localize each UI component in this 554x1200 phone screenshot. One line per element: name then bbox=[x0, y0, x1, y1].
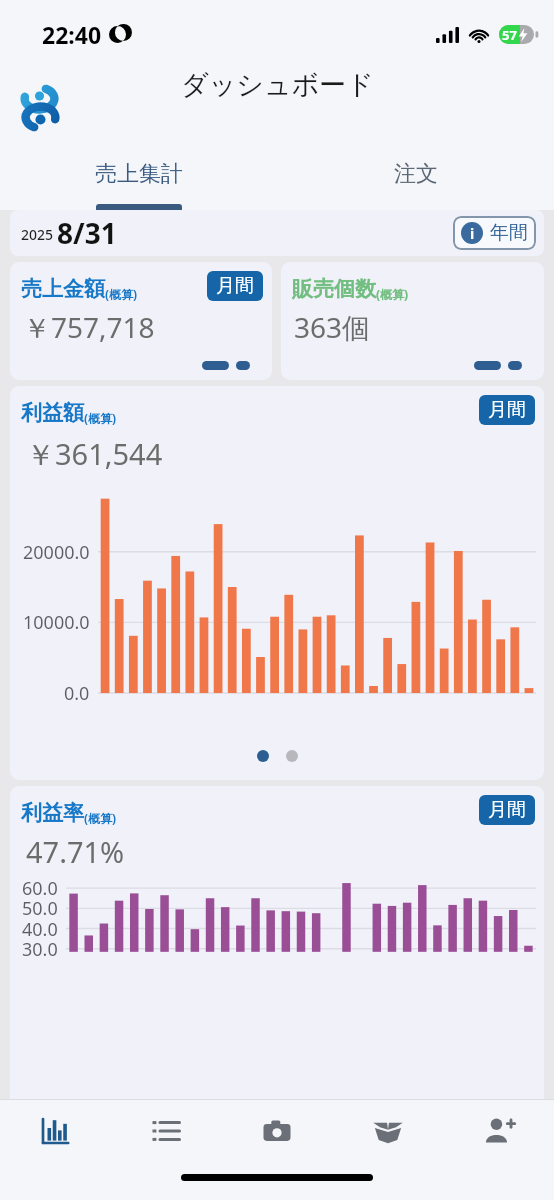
button[interactable]: App logo bbox=[16, 84, 64, 132]
button[interactable]: 月間 bbox=[207, 271, 263, 301]
button[interactable]: 2025 bbox=[10, 210, 544, 256]
button[interactable]: List bbox=[110, 1100, 221, 1162]
staticText: ￥361,544 bbox=[26, 434, 163, 474]
button[interactable]: 利益額 bbox=[10, 386, 544, 780]
staticText: 注文 bbox=[394, 160, 438, 188]
staticText: 利益率 bbox=[21, 800, 84, 826]
staticText: 30.0 bbox=[22, 937, 58, 962]
button[interactable]: 売上集計 bbox=[0, 148, 277, 210]
button[interactable]: Inventory bbox=[332, 1100, 443, 1162]
staticText: 60.0 bbox=[22, 876, 58, 901]
staticText: 2025 bbox=[21, 225, 54, 244]
button[interactable]: 販売個数 bbox=[281, 262, 544, 380]
staticText: (概算) bbox=[84, 410, 117, 426]
staticText: ダッシュボード bbox=[181, 68, 374, 102]
staticText: 利益額 bbox=[21, 400, 84, 426]
staticText: ￥757,718 bbox=[23, 308, 155, 346]
button[interactable]: 注文 bbox=[277, 148, 554, 210]
staticText: (概算) bbox=[105, 286, 138, 302]
staticText: (概算) bbox=[376, 286, 409, 302]
staticText: 月間 bbox=[488, 398, 526, 422]
staticText: 売上金額 bbox=[21, 276, 105, 302]
button[interactable]: 月間 bbox=[479, 795, 535, 825]
staticText: 22:40 bbox=[42, 19, 102, 50]
staticText: 月間 bbox=[488, 798, 526, 822]
button[interactable]: i bbox=[453, 216, 536, 250]
button[interactable]: Camera bbox=[221, 1100, 332, 1162]
staticText: 57 bbox=[502, 26, 517, 44]
staticText: 販売個数 bbox=[292, 276, 376, 302]
staticText: (概算) bbox=[84, 810, 117, 826]
button[interactable]: 月間 bbox=[479, 395, 535, 425]
button[interactable]: Add customer bbox=[443, 1100, 554, 1162]
staticText: 0.0 bbox=[64, 681, 90, 706]
staticText: 47.71% bbox=[26, 832, 125, 871]
staticText: 10000.0 bbox=[23, 610, 90, 635]
button[interactable]: 利益率 bbox=[10, 786, 544, 1099]
button[interactable]: Dashboard bbox=[0, 1100, 110, 1162]
staticText: 月間 bbox=[216, 274, 254, 298]
staticText: 20000.0 bbox=[23, 540, 90, 565]
staticText: 50.0 bbox=[22, 896, 58, 921]
staticText: 40.0 bbox=[22, 917, 58, 942]
button[interactable]: 売上金額 bbox=[10, 262, 272, 380]
staticText: i bbox=[470, 224, 475, 243]
staticText: 363個 bbox=[294, 308, 371, 346]
staticText: 8/31 bbox=[57, 214, 117, 252]
staticText: 売上集計 bbox=[95, 160, 183, 188]
staticText: 年間 bbox=[490, 221, 528, 245]
